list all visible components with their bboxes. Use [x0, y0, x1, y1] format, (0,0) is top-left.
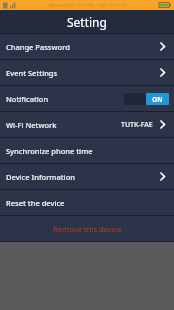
staticText: Event Settings [6, 68, 58, 78]
staticText: developer mode, tap to quit [48, 1, 127, 9]
button[interactable]: Notification toggle, on [124, 93, 169, 105]
staticText: Synchronize phone time [6, 146, 93, 156]
button[interactable]: Notification [0, 86, 174, 111]
button[interactable]: Wi-Fi Network [0, 112, 174, 137]
staticText: Wi-Fi Network [6, 120, 57, 130]
staticText: Reset the device [6, 198, 65, 208]
staticText: ON [152, 95, 163, 104]
button[interactable]: Event Settings [0, 60, 174, 85]
button[interactable]: Remove this device [0, 216, 174, 241]
staticText: Setting [67, 14, 107, 30]
staticText: Notification [6, 94, 49, 104]
button[interactable]: Reset the device [0, 190, 174, 215]
staticText: Device Information [6, 172, 75, 182]
button[interactable]: Device Information [0, 164, 174, 189]
button[interactable]: Synchronize phone time [0, 138, 174, 163]
staticText: Change Password [6, 42, 70, 52]
staticText: TUTK-FAE [121, 120, 153, 130]
staticText: Remove this device [53, 224, 122, 234]
button[interactable]: Change Password [0, 34, 174, 59]
